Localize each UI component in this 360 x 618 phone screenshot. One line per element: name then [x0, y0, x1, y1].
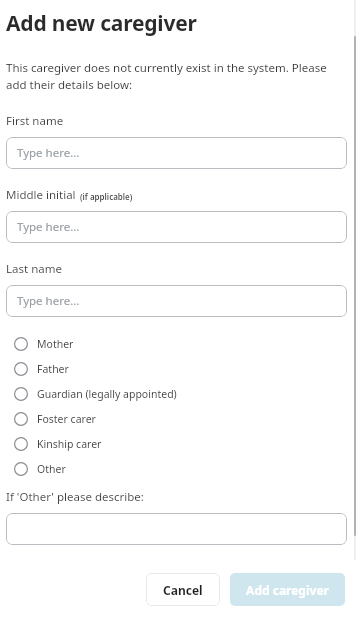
button[interactable]: Father: [6, 356, 347, 381]
button[interactable]: [6, 513, 347, 545]
staticText: Type here...: [17, 293, 80, 309]
button[interactable]: Mother: [6, 331, 347, 356]
staticText: Kinship carer: [37, 437, 102, 451]
staticText: Last name: [6, 261, 62, 277]
button[interactable]: Type here...: [6, 285, 347, 317]
staticText: First name: [6, 113, 64, 129]
staticText: Foster carer: [37, 412, 96, 426]
staticText: Add new caregiver: [6, 9, 197, 38]
button[interactable]: Kinship carer: [6, 431, 347, 456]
staticText: Cancel: [163, 582, 203, 598]
staticText: Middle initial: [6, 187, 76, 203]
staticText: (if applicable): [80, 191, 133, 202]
staticText: If 'Other' please describe:: [6, 489, 144, 505]
staticText: Type here...: [17, 145, 80, 161]
staticText: Guardian (legally appointed): [37, 387, 177, 401]
staticText: Type here...: [17, 219, 80, 235]
button[interactable]: Type here...: [6, 137, 347, 169]
staticText: Mother: [37, 337, 74, 351]
button[interactable]: Cancel: [146, 573, 220, 606]
staticText: Add caregiver: [246, 582, 329, 598]
button[interactable]: Type here...: [6, 211, 347, 243]
staticText: Other: [37, 462, 66, 476]
staticText: This caregiver does not currently exist …: [6, 60, 347, 93]
staticText: Father: [37, 362, 69, 376]
button[interactable]: Foster carer: [6, 406, 347, 431]
button[interactable]: Other: [6, 456, 347, 481]
button[interactable]: Add caregiver: [230, 573, 345, 606]
button[interactable]: Guardian (legally appointed): [6, 381, 347, 406]
